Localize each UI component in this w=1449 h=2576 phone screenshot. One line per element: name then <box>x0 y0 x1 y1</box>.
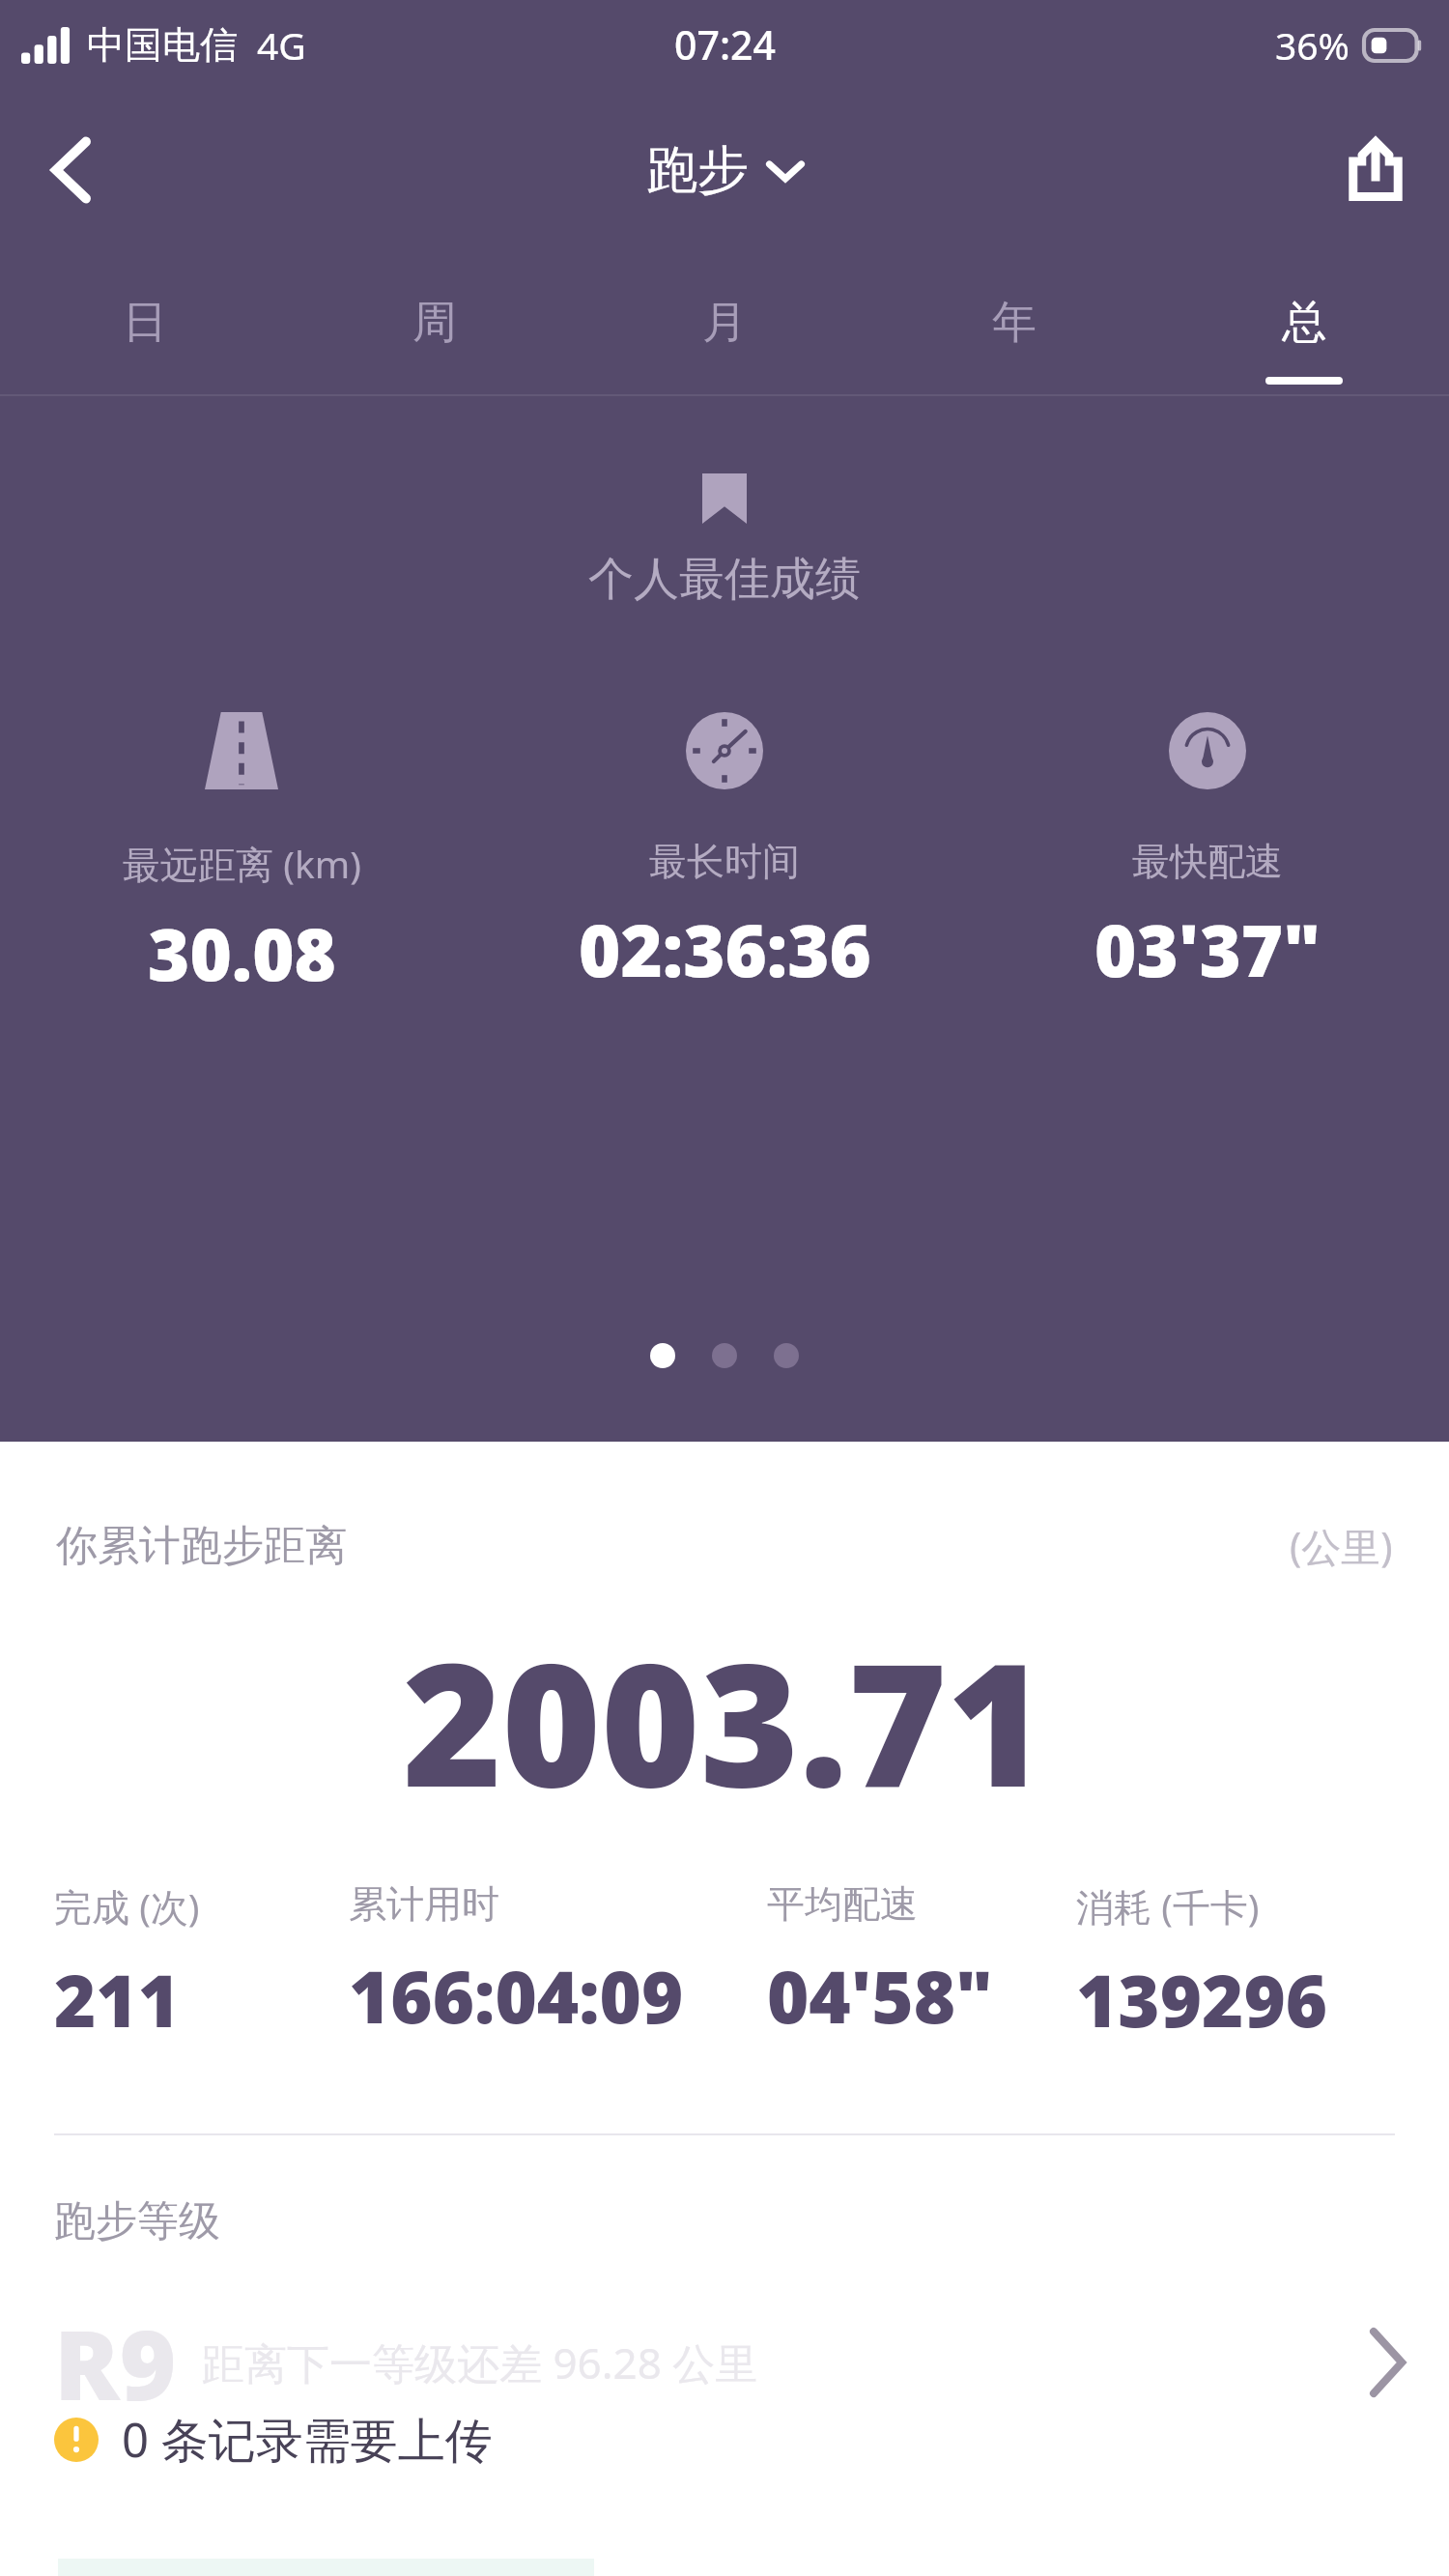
button[interactable]: 月 <box>580 251 869 394</box>
button[interactable]: R9 <box>0 2290 1449 2435</box>
staticText: 年 <box>992 295 1037 351</box>
button[interactable]: 完成 (次) <box>54 1880 349 2048</box>
staticText: 04'58" <box>767 1947 993 2045</box>
staticText: 个人最佳成绩 <box>588 551 861 608</box>
staticText: 周 <box>412 295 457 351</box>
staticText: 0 条记录需要上传 <box>122 2407 493 2472</box>
staticText: 日 <box>123 295 167 351</box>
staticText: 211 <box>54 1951 181 2048</box>
staticText: 距离下一等级还差 96.28 公里 <box>202 2333 758 2391</box>
button[interactable]: Back <box>17 116 126 224</box>
button[interactable]: 日 <box>0 251 290 394</box>
button[interactable]: 最远距离 (km) <box>0 712 483 1002</box>
staticText: R9 <box>54 2297 177 2428</box>
staticText: 中国电信 <box>87 21 238 69</box>
button[interactable]: 最长时间 <box>483 712 966 998</box>
button[interactable]: 累计用时 <box>349 1880 767 2045</box>
button[interactable]: 周 <box>290 251 580 394</box>
button[interactable]: Share <box>1321 116 1430 224</box>
staticText: 36% <box>1275 19 1350 71</box>
staticText: 完成 (次) <box>54 1880 200 1932</box>
button[interactable]: 消耗 (千卡) <box>1076 1880 1401 2048</box>
staticText: 139296 <box>1076 1951 1328 2048</box>
staticText: (公里) <box>1290 1519 1393 1573</box>
staticText: 2003.71 <box>403 1606 1046 1836</box>
staticText: 跑步等级 <box>54 2195 220 2247</box>
staticText: 30.08 <box>148 904 336 1002</box>
staticText: 跑步 <box>646 138 749 203</box>
staticText: 平均配速 <box>767 1880 918 1928</box>
staticText: 最快配速 <box>1132 838 1283 885</box>
button[interactable]: 年 <box>869 251 1159 394</box>
staticText: 月 <box>702 295 747 351</box>
button[interactable]: 跑步 <box>646 138 803 203</box>
button[interactable]: 总 <box>1159 251 1449 394</box>
staticText: 4G <box>257 19 306 71</box>
button[interactable]: 平均配速 <box>767 1880 1076 2045</box>
staticText: 166:04:09 <box>349 1947 684 2045</box>
staticText: 07:24 <box>674 17 776 72</box>
button[interactable]: 最快配速 <box>966 712 1449 998</box>
staticText: 最远距离 (km) <box>123 838 361 889</box>
staticText: 总 <box>1282 295 1326 351</box>
button[interactable]: 0 条记录需要上传 <box>54 2407 493 2472</box>
staticText: 最长时间 <box>649 838 800 885</box>
staticText: 你累计跑步距离 <box>56 1520 347 1572</box>
staticText: 02:36:36 <box>579 901 871 998</box>
staticText: 03'37" <box>1094 901 1321 998</box>
staticText: 累计用时 <box>349 1880 499 1928</box>
staticText: 消耗 (千卡) <box>1076 1880 1260 1932</box>
